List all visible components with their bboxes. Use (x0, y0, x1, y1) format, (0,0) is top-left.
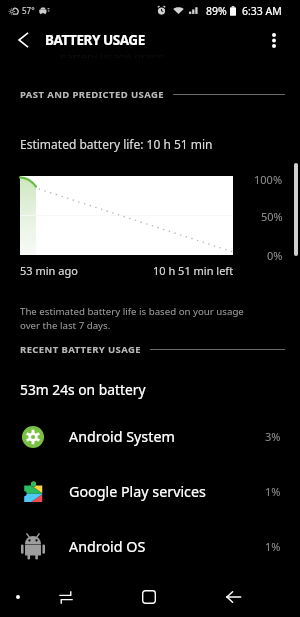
staticText: The estimated battery life is based on y… (20, 305, 255, 332)
staticText: 100% (254, 172, 283, 187)
staticText: 10 h 51 min left (153, 263, 234, 278)
staticText: 57° (22, 5, 35, 16)
staticText: Android System (69, 427, 175, 446)
staticText: 50% (261, 209, 283, 224)
staticText: 89% (206, 4, 227, 18)
staticText: 1% (265, 484, 281, 499)
staticText: RECENT BATTERY USAGE (20, 343, 141, 356)
staticText: BATTERY USAGE (45, 31, 145, 49)
staticText: battery usage graph (60, 55, 165, 58)
button[interactable]: More options (257, 23, 291, 57)
button[interactable]: Back (219, 583, 247, 611)
staticText: 0% (267, 248, 283, 263)
staticText: Estimated battery life: 10 h 51 min (20, 136, 213, 152)
staticText: Android OS (69, 537, 146, 556)
staticText: 6:33 AM (242, 4, 282, 18)
staticText: 53 min ago (20, 263, 78, 278)
staticText: 3% (265, 429, 281, 444)
button[interactable]: Android OS (0, 519, 300, 574)
button[interactable]: Recent apps (52, 583, 80, 611)
staticText: 53m 24s on battery (20, 380, 146, 399)
staticText: 1% (265, 539, 281, 554)
button[interactable]: Android System (0, 409, 300, 464)
button[interactable]: Home (135, 583, 163, 611)
staticText: Google Play services (69, 482, 206, 501)
staticText: PAST AND PREDICTED USAGE (20, 88, 164, 101)
button[interactable]: Navigate up (6, 23, 40, 57)
button[interactable]: Assistant (4, 583, 32, 611)
button[interactable]: Google Play services (0, 464, 300, 519)
